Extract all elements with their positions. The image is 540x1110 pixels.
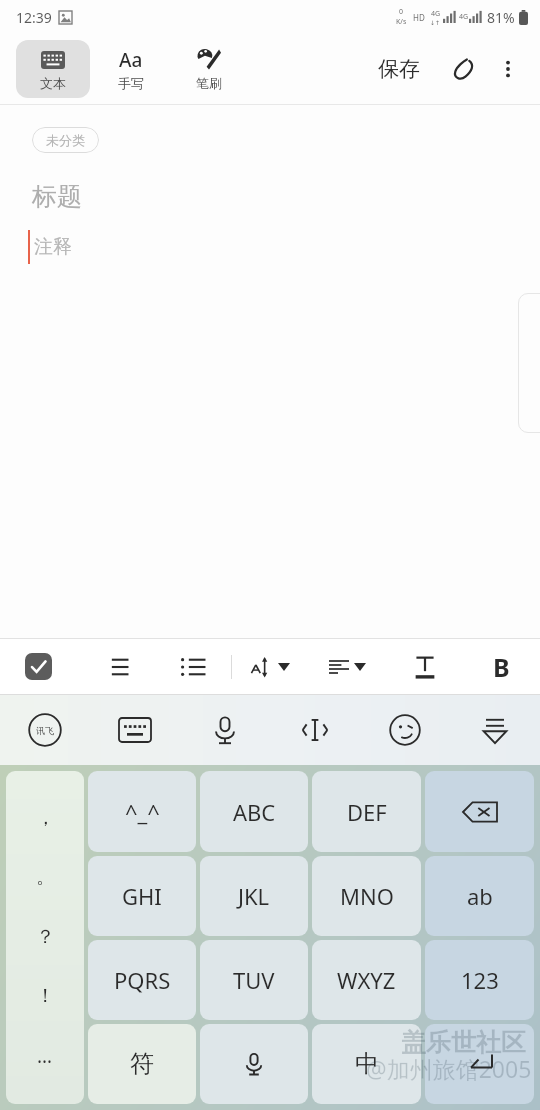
button[interactable]: Input method (0, 695, 90, 765)
button[interactable]: Emoji (360, 695, 450, 765)
staticText: B (493, 650, 510, 684)
button[interactable]: 笔刷 (172, 40, 246, 98)
staticText: DEF (347, 797, 387, 827)
staticText: 中 (355, 1049, 379, 1079)
button[interactable]: ， (6, 771, 84, 1104)
staticText: 符 (130, 1049, 154, 1079)
staticText: 123 (461, 965, 499, 995)
button[interactable]: Numbered list (77, 639, 154, 694)
button[interactable]: MNO (312, 856, 421, 936)
staticText: WXYZ (337, 965, 396, 995)
button[interactable]: TUV (200, 940, 308, 1020)
staticText: ↓↑ (430, 19, 441, 26)
staticText: 未分类 (46, 132, 85, 148)
button[interactable]: Keyboard layout (90, 695, 180, 765)
staticText: ， (36, 806, 55, 830)
button[interactable]: Aa (94, 40, 168, 98)
staticText: 保存 (378, 56, 420, 82)
staticText: 4G (431, 9, 441, 19)
staticText: 笔刷 (196, 75, 222, 91)
staticText: PQRS (114, 965, 171, 995)
button[interactable]: ^_^ (88, 771, 196, 852)
staticText: ？ (36, 925, 55, 949)
button[interactable]: Cursor move (270, 695, 360, 765)
button[interactable]: ABC (200, 771, 308, 852)
button[interactable]: Hide keyboard (450, 695, 540, 765)
staticText: Aa (119, 47, 143, 73)
button[interactable]: Bold (463, 639, 540, 694)
button[interactable]: Attach (444, 49, 484, 89)
button[interactable]: Enter (425, 1024, 534, 1104)
staticText: 手写 (118, 75, 144, 91)
button[interactable]: Checklist (0, 639, 77, 694)
button[interactable]: WXYZ (312, 940, 421, 1020)
staticText: JKL (238, 881, 270, 911)
staticText: 文本 (40, 75, 66, 91)
staticText: TUV (233, 965, 275, 995)
staticText: 盖乐世社区 (401, 1027, 526, 1058)
button[interactable] (200, 1024, 308, 1104)
button[interactable]: DEF (312, 771, 421, 852)
staticText: 注释 (34, 235, 72, 259)
button[interactable]: Font size (232, 639, 309, 694)
staticText: 0 (399, 7, 404, 17)
button[interactable]: More options (490, 51, 526, 87)
button[interactable]: 中 (312, 1024, 421, 1104)
button[interactable]: ab (425, 856, 534, 936)
staticText: ^_^ (125, 797, 160, 827)
button[interactable]: Bulleted list (154, 639, 231, 694)
button[interactable]: 保存 (370, 50, 428, 88)
button[interactable]: Backspace (425, 771, 534, 852)
button[interactable]: Alignment (309, 639, 386, 694)
button[interactable]: 符 (88, 1024, 196, 1104)
button[interactable]: PQRS (88, 940, 196, 1020)
button[interactable]: 123 (425, 940, 534, 1020)
staticText: ABC (233, 797, 276, 827)
staticText: 标题 (32, 181, 82, 212)
staticText: ab (467, 881, 493, 911)
staticText: 讯飞 (36, 725, 54, 736)
staticText: GHI (122, 881, 162, 911)
button[interactable]: Voice input (180, 695, 270, 765)
staticText: 81% (487, 8, 515, 27)
staticText: @加州旅馆2005 (366, 1053, 532, 1084)
button[interactable]: Text color (386, 639, 463, 694)
staticText: 4G (459, 12, 469, 22)
button[interactable]: 未分类 (32, 127, 99, 153)
button[interactable]: JKL (200, 856, 308, 936)
button[interactable]: GHI (88, 856, 196, 936)
staticText: 。 (36, 865, 55, 889)
button[interactable]: 文本 (16, 40, 90, 98)
staticText: ！ (36, 984, 55, 1008)
staticText: K/s (396, 17, 407, 27)
staticText: HD (413, 12, 425, 23)
staticText: MNO (340, 881, 394, 911)
staticText: … (37, 1043, 53, 1069)
staticText: 12:39 (16, 8, 52, 27)
